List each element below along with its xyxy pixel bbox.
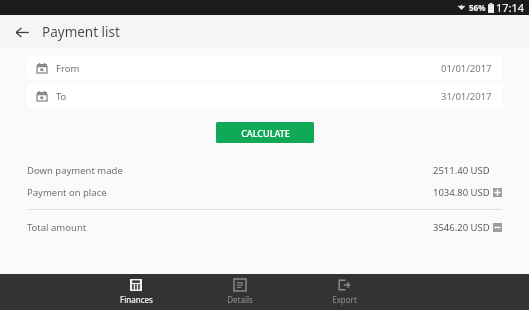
button[interactable]: Total amount: [0, 216, 529, 238]
staticText: 17:14: [496, 0, 525, 15]
staticText: 56%: [469, 2, 486, 13]
button[interactable]: Finances: [105, 274, 167, 310]
staticText: 1034.80 USD: [433, 186, 490, 199]
button[interactable]: Back: [8, 18, 36, 46]
button[interactable]: Down payment made: [0, 159, 529, 181]
staticText: Total amount: [27, 221, 87, 234]
staticText: Down payment made: [27, 164, 123, 177]
staticText: To: [56, 90, 67, 103]
button[interactable]: CALCULATE: [216, 122, 314, 143]
button[interactable]: To: [27, 84, 502, 108]
staticText: Payment list: [42, 23, 120, 41]
staticText: 2511.40 USD: [433, 164, 490, 177]
button[interactable]: Payment on place: [0, 181, 529, 203]
staticText: 31/01/2017: [441, 90, 492, 103]
staticText: Payment on place: [27, 186, 107, 199]
button[interactable]: Details: [209, 274, 271, 310]
staticText: Export: [332, 294, 357, 305]
staticText: Details: [227, 294, 253, 305]
button[interactable]: From: [27, 56, 502, 80]
staticText: 3546.20 USD: [433, 221, 490, 234]
staticText: CALCULATE: [241, 127, 290, 139]
button[interactable]: Export: [313, 274, 375, 310]
staticText: 01/01/2017: [441, 62, 492, 75]
staticText: From: [56, 62, 80, 75]
staticText: Finances: [120, 294, 153, 305]
